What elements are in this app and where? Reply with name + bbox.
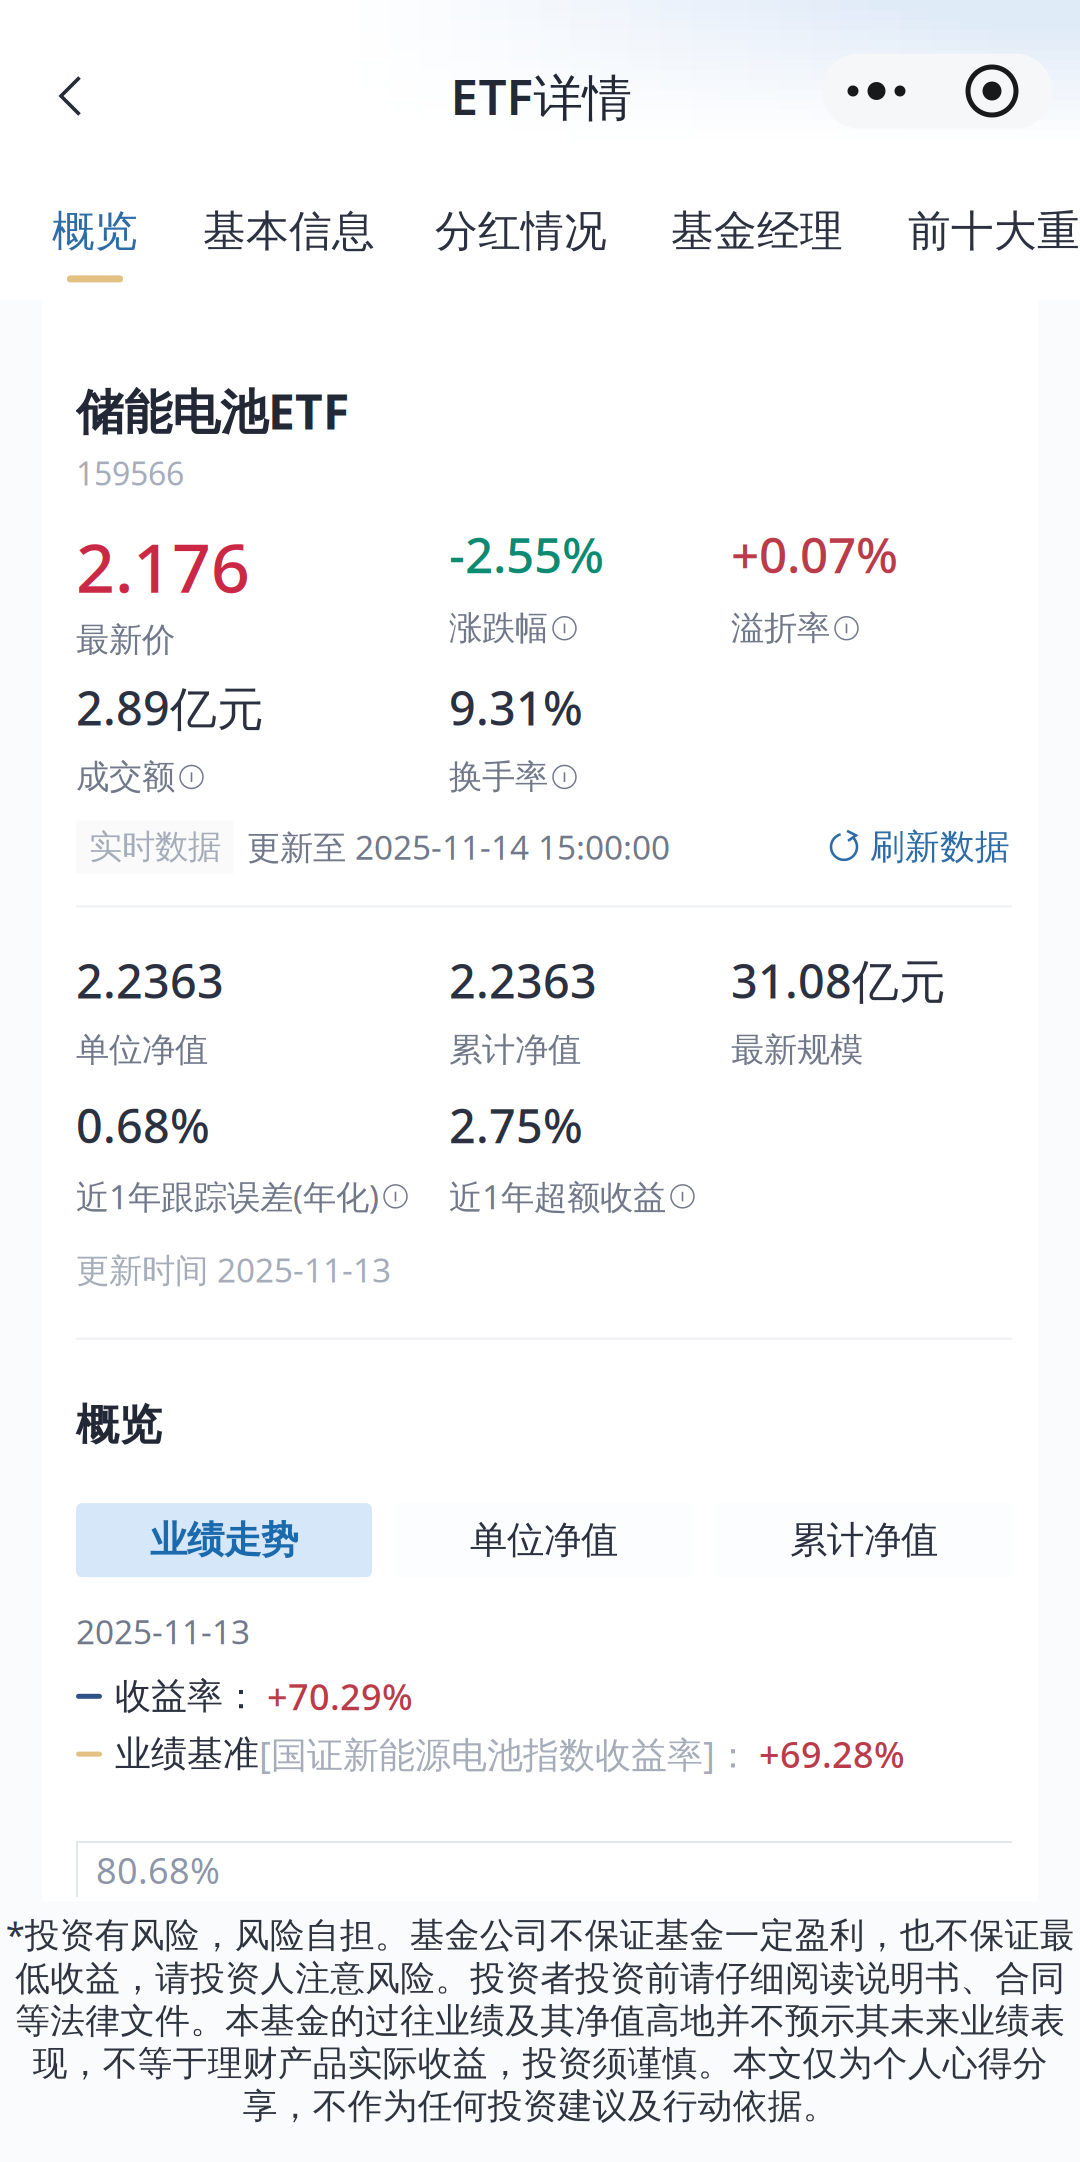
staticText: 单位净值 (470, 1517, 618, 1563)
staticText: 业绩基准 (115, 1732, 259, 1776)
staticText: 基金经理 (671, 205, 843, 257)
staticText: +69.28% (759, 1730, 905, 1778)
button[interactable]: Back (15, 21, 125, 171)
staticText: 159566 (76, 452, 184, 494)
staticText: 9.31% (449, 676, 583, 738)
staticText: 分红情况 (435, 205, 607, 257)
staticText: 概览 (52, 205, 138, 257)
staticText: 近1年超额收益 (449, 1174, 666, 1218)
button[interactable]: 基本信息 (203, 160, 375, 300)
staticText: 2.89亿元 (76, 676, 264, 738)
staticText: 刷新数据 (870, 826, 1010, 868)
staticText: ETF详情 (450, 63, 631, 129)
staticText: 0.68% (76, 1094, 210, 1156)
button[interactable]: 刷新数据 (828, 826, 1012, 868)
button[interactable]: 业绩走势 (76, 1503, 372, 1577)
button[interactable]: 基金经理 (671, 160, 843, 300)
staticText: +70.29% (267, 1672, 413, 1720)
staticText: [国证新能源电池指数收益率]： (259, 1730, 751, 1778)
staticText: 溢折率 (731, 608, 830, 649)
button[interactable]: More (821, 53, 931, 128)
button[interactable]: 累计净值 (716, 1503, 1012, 1577)
staticText: 实时数据 (89, 826, 221, 867)
staticText: 累计净值 (449, 1029, 581, 1070)
staticText: 基本信息 (203, 205, 375, 257)
staticText: 概览 (76, 1399, 162, 1451)
staticText: *投资有风险，风险自担。基金公司不保证基金一定盈利，也不保证最低收益，请投资人注… (5, 1911, 1074, 2127)
staticText: -2.55% (449, 521, 604, 587)
button[interactable]: 前十大重 (908, 160, 1080, 300)
staticText: 累计净值 (790, 1517, 938, 1563)
staticText: 收益率： (115, 1674, 259, 1718)
button[interactable]: 概览 (52, 160, 138, 300)
staticText: 单位净值 (76, 1029, 208, 1070)
button[interactable]: 分红情况 (435, 160, 607, 300)
staticText: 31.08亿元 (731, 949, 946, 1011)
staticText: 2025-11-13 (76, 1609, 250, 1653)
staticText: 成交额 (76, 756, 175, 797)
staticText: 业绩走势 (150, 1517, 298, 1563)
staticText: 换手率 (449, 756, 548, 797)
button[interactable]: Close mini program (931, 53, 1052, 128)
staticText: 更新至 2025-11-14 15:00:00 (247, 825, 670, 869)
staticText: 2.2363 (449, 949, 597, 1011)
staticText: 储能电池ETF (76, 379, 349, 443)
staticText: 更新时间 2025-11-13 (76, 1247, 391, 1292)
staticText: 最新价 (76, 619, 175, 660)
staticText: 2.75% (449, 1094, 583, 1156)
staticText: 80.68% (96, 1846, 220, 1894)
staticText: 2.2363 (76, 949, 224, 1011)
staticText: 最新规模 (731, 1029, 863, 1070)
staticText: 前十大重 (908, 205, 1080, 257)
button[interactable]: 单位净值 (396, 1503, 692, 1577)
staticText: 近1年跟踪误差(年化) (76, 1174, 379, 1218)
staticText: +0.07% (731, 521, 898, 587)
staticText: 2.176 (76, 521, 250, 611)
staticText: 涨跌幅 (449, 608, 548, 649)
